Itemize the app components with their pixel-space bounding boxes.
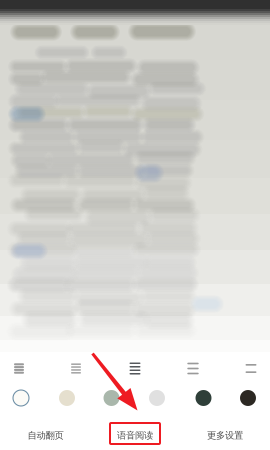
button[interactable]: Theme colour 6 bbox=[228, 386, 268, 410]
button[interactable]: Line spacing option 5 bbox=[228, 355, 270, 381]
button[interactable]: Theme colour 1 bbox=[1, 386, 41, 410]
button[interactable]: Line spacing option 1 bbox=[0, 355, 42, 381]
button[interactable]: Theme colour 4 bbox=[137, 386, 177, 410]
button[interactable]: Theme colour 3 bbox=[91, 386, 131, 410]
button[interactable]: 语音阅读 bbox=[99, 425, 171, 445]
button[interactable]: Line spacing option 3 bbox=[112, 355, 158, 381]
button[interactable]: Theme colour 2 bbox=[47, 386, 87, 410]
button[interactable]: Line spacing option 4 bbox=[170, 355, 216, 381]
button[interactable]: Theme colour 5 bbox=[183, 386, 223, 410]
staticText: 自动翻页 bbox=[27, 430, 63, 441]
button[interactable]: 自动翻页 bbox=[9, 425, 81, 445]
staticText: 更多设置 bbox=[207, 430, 243, 441]
button[interactable]: 更多设置 bbox=[189, 425, 261, 445]
staticText: 语音阅读 bbox=[117, 430, 153, 441]
button[interactable]: Line spacing option 2 bbox=[53, 355, 99, 381]
